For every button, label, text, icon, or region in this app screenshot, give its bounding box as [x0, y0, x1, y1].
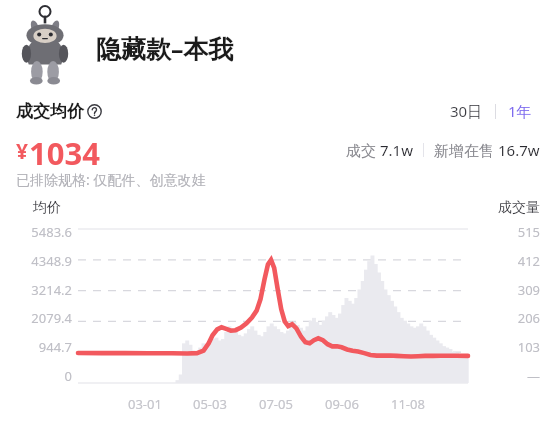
other: Help about average price	[87, 104, 102, 119]
staticText: 3214.2	[31, 281, 72, 297]
staticText: 09-06	[325, 395, 359, 413]
staticText: 16.7w	[498, 140, 540, 160]
staticText: 103	[517, 338, 540, 354]
staticText: 成交	[346, 140, 380, 160]
staticText: 7.1w	[380, 140, 413, 160]
staticText: 0	[64, 367, 72, 383]
button[interactable]: 成交	[346, 140, 413, 160]
button[interactable]: 30日	[444, 99, 489, 123]
button[interactable]: 隐藏款–本我	[0, 0, 554, 96]
staticText: 515	[517, 223, 540, 239]
staticText: 隐藏款–本我	[96, 31, 234, 65]
staticText: 05-03	[193, 395, 227, 413]
staticText: 成交量	[498, 199, 540, 217]
staticText: 1年	[508, 101, 532, 121]
button[interactable]: 成交均价	[16, 101, 102, 122]
staticText: 03-01	[128, 395, 162, 413]
staticText: 成交均价	[16, 101, 84, 122]
staticText: ¥	[16, 137, 29, 166]
staticText: 已排除规格: 仅配件、创意改娃	[16, 170, 206, 189]
staticText: 309	[517, 281, 540, 297]
staticText: 4348.9	[31, 252, 72, 268]
staticText: 5483.6	[31, 223, 72, 239]
staticText: 412	[517, 252, 540, 268]
staticText: 30日	[450, 101, 483, 121]
button[interactable]: 1年	[502, 99, 538, 123]
staticText: 1034	[29, 132, 100, 168]
staticText: —	[526, 367, 540, 383]
staticText: 206	[517, 309, 540, 325]
staticText: 2079.4	[31, 309, 72, 325]
button[interactable]: 新增在售	[434, 140, 540, 160]
staticText: 944.7	[38, 338, 72, 354]
staticText: 均价	[33, 199, 61, 217]
staticText: 新增在售	[434, 140, 498, 160]
staticText: 07-05	[259, 395, 293, 413]
staticText: 11-08	[391, 395, 425, 413]
